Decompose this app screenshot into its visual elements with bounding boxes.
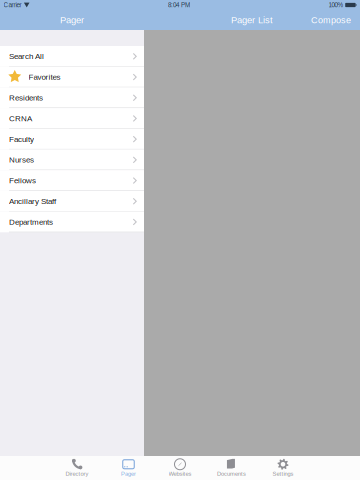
staticText: Compose <box>311 15 351 25</box>
button[interactable]: Pager <box>103 456 154 480</box>
staticText: Faculty <box>9 135 34 144</box>
staticText: 100% <box>329 1 344 8</box>
button[interactable]: Fellows <box>0 170 144 191</box>
button[interactable]: Faculty <box>0 129 144 149</box>
button[interactable]: Departments <box>0 212 144 232</box>
button[interactable]: CRNA <box>0 108 144 129</box>
staticText: Residents <box>9 93 43 102</box>
button[interactable]: Residents <box>0 87 144 108</box>
staticText: Pager List <box>231 15 273 25</box>
staticText: Directory <box>65 470 88 477</box>
button[interactable]: Ancillary Staff <box>0 191 144 212</box>
staticText: Pager <box>121 470 136 477</box>
staticText: Websites <box>168 470 191 477</box>
staticText: Ancillary Staff <box>9 197 56 206</box>
staticText: Carrier <box>3 1 21 8</box>
staticText: 8:04 PM <box>168 1 190 8</box>
button[interactable]: Compose <box>311 10 351 30</box>
button[interactable]: Favorites <box>0 67 144 87</box>
staticText: Departments <box>9 217 53 226</box>
staticText: Search All <box>9 52 44 61</box>
button[interactable]: Settings <box>257 456 309 480</box>
button[interactable]: Directory <box>51 456 103 480</box>
staticText: Documents <box>217 470 246 477</box>
staticText: Pager <box>60 15 84 25</box>
staticText: Settings <box>272 470 293 477</box>
button[interactable]: Search All <box>0 46 144 67</box>
button[interactable]: Websites <box>154 456 206 480</box>
staticText: CRNA <box>9 114 32 123</box>
staticText: Favorites <box>28 73 60 81</box>
button[interactable]: Nurses <box>0 149 144 170</box>
staticText: Nurses <box>9 155 34 164</box>
staticText: Fellows <box>9 176 36 185</box>
button[interactable]: Documents <box>206 456 257 480</box>
